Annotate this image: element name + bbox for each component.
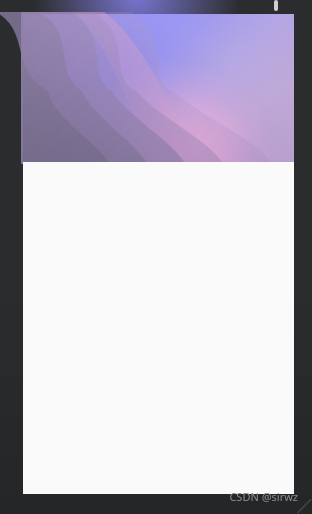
staticText: CSDN @sirwz (229, 489, 298, 504)
button[interactable]: Wallpaper preview (23, 14, 294, 162)
